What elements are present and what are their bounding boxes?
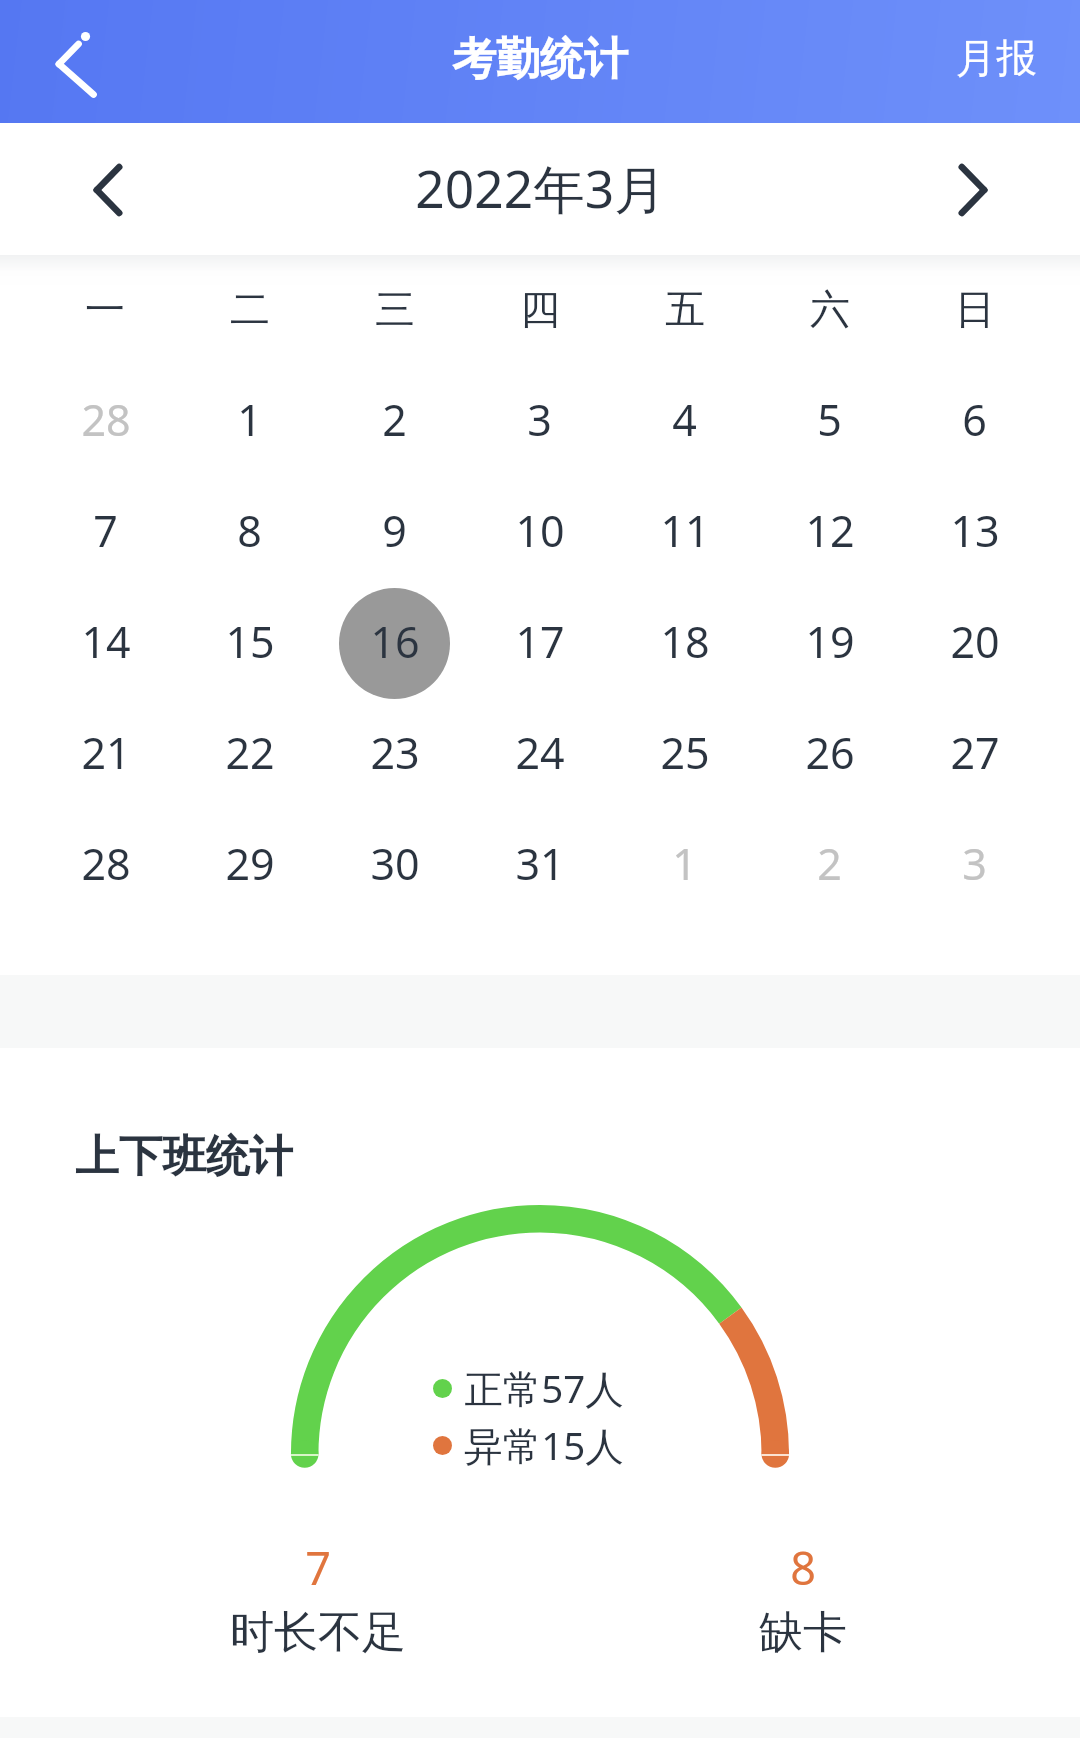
button[interactable]: 1 — [194, 364, 305, 475]
staticText: 18 — [660, 612, 710, 671]
staticText: 21 — [81, 723, 131, 782]
button[interactable]: Back — [20, 7, 130, 117]
button[interactable]: Previous month — [59, 141, 157, 239]
button[interactable]: 10 — [484, 475, 595, 586]
button[interactable]: 2 — [774, 808, 885, 919]
staticText: 6 — [962, 390, 987, 449]
staticText: 时长不足 — [230, 1605, 406, 1660]
button[interactable]: 5 — [774, 364, 885, 475]
button[interactable]: 29 — [194, 808, 305, 919]
staticText: 27 — [950, 723, 1000, 782]
staticText: 月报 — [956, 33, 1037, 84]
staticText: 15 — [225, 612, 275, 671]
button[interactable]: 19 — [774, 586, 885, 697]
button[interactable]: 17 — [484, 586, 595, 697]
staticText: 11 — [660, 501, 710, 560]
button[interactable]: 8 — [194, 475, 305, 586]
staticText: 23 — [370, 723, 420, 782]
staticText: 正常57人 — [464, 1362, 624, 1415]
button[interactable]: 6 — [919, 364, 1030, 475]
staticText: 一 — [85, 284, 125, 334]
staticText: 9 — [382, 501, 407, 560]
staticText: 7 — [305, 1537, 331, 1598]
staticText: 7 — [93, 501, 118, 560]
staticText: 16 — [370, 612, 420, 671]
staticText: 四 — [520, 284, 560, 334]
staticText: 异常15人 — [464, 1419, 624, 1472]
staticText: 4 — [672, 390, 697, 449]
button[interactable]: 24 — [484, 697, 595, 808]
button[interactable]: 9 — [339, 475, 450, 586]
staticText: 28 — [81, 834, 131, 893]
staticText: 1 — [237, 390, 262, 449]
staticText: 26 — [805, 723, 855, 782]
button[interactable]: 28 — [50, 364, 161, 475]
staticText: 22 — [225, 723, 275, 782]
button[interactable]: 7 — [168, 1527, 468, 1677]
button[interactable]: 7 — [50, 475, 161, 586]
staticText: 28 — [81, 390, 131, 449]
staticText: 3 — [962, 834, 987, 893]
button[interactable]: 正常57人 — [433, 1362, 624, 1415]
button[interactable]: 4 — [629, 364, 740, 475]
staticText: 3 — [527, 390, 552, 449]
staticText: 30 — [370, 834, 420, 893]
staticText: 24 — [515, 723, 565, 782]
staticText: 17 — [515, 612, 565, 671]
button[interactable]: 31 — [484, 808, 595, 919]
button[interactable]: 25 — [629, 697, 740, 808]
button[interactable]: 27 — [919, 697, 1030, 808]
button[interactable]: 22 — [194, 697, 305, 808]
staticText: 五 — [665, 284, 705, 334]
button[interactable]: 3 — [919, 808, 1030, 919]
staticText: 19 — [805, 612, 855, 671]
button[interactable]: 18 — [629, 586, 740, 697]
button[interactable]: 异常15人 — [433, 1419, 624, 1472]
staticText: 13 — [950, 501, 1000, 560]
button[interactable]: 12 — [774, 475, 885, 586]
staticText: 2 — [382, 390, 407, 449]
button[interactable]: 16 — [339, 588, 450, 699]
staticText: 考勤统计 — [452, 32, 628, 87]
button[interactable]: 13 — [919, 475, 1030, 586]
staticText: 20 — [950, 612, 1000, 671]
staticText: 二 — [230, 284, 270, 334]
staticText: 2 — [817, 834, 842, 893]
button[interactable]: 月报 — [956, 33, 1037, 84]
button[interactable]: 1 — [629, 808, 740, 919]
staticText: 14 — [81, 612, 131, 671]
staticText: 25 — [660, 723, 710, 782]
button[interactable]: 3 — [484, 364, 595, 475]
staticText: 8 — [237, 501, 262, 560]
staticText: 29 — [225, 834, 275, 893]
button[interactable]: 11 — [629, 475, 740, 586]
staticText: 8 — [790, 1537, 816, 1598]
button[interactable]: 8 — [653, 1527, 953, 1677]
staticText: 缺卡 — [759, 1605, 847, 1660]
staticText: 日 — [955, 284, 995, 334]
staticText: 上下班统计 — [75, 1129, 293, 1184]
button[interactable]: 26 — [774, 697, 885, 808]
button[interactable]: 30 — [339, 808, 450, 919]
button[interactable]: Next month — [924, 141, 1022, 239]
staticText: 三 — [375, 284, 415, 334]
button[interactable]: 20 — [919, 586, 1030, 697]
staticText: 1 — [672, 834, 697, 893]
staticText: 12 — [805, 501, 855, 560]
staticText: 31 — [515, 834, 565, 893]
staticText: 5 — [817, 390, 842, 449]
staticText: 2022年3月 — [415, 153, 666, 223]
button[interactable]: 28 — [50, 808, 161, 919]
button[interactable]: 21 — [50, 697, 161, 808]
button[interactable]: 2 — [339, 364, 450, 475]
button[interactable]: 14 — [50, 586, 161, 697]
button[interactable]: 15 — [194, 586, 305, 697]
button[interactable]: 23 — [339, 697, 450, 808]
staticText: 10 — [515, 501, 565, 560]
staticText: 六 — [810, 284, 850, 334]
